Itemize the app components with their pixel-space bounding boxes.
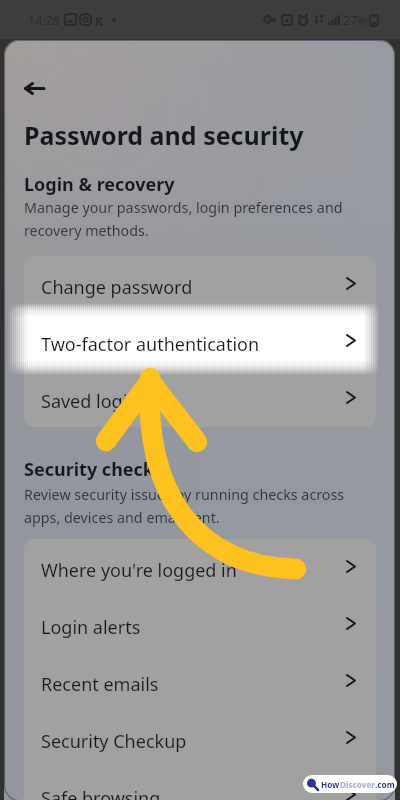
staticText: Security Checkup (41, 729, 187, 754)
staticText: Change password (41, 275, 193, 300)
button[interactable]: Where you're logged in (24, 539, 376, 596)
staticText: Saved logins (41, 389, 148, 414)
staticText: How (321, 779, 340, 790)
button[interactable]: Two-factor authentication (24, 313, 376, 370)
staticText: Discover (340, 779, 375, 790)
staticText: Password and security (24, 118, 304, 152)
button[interactable]: Two-factor authentication (24, 313, 376, 370)
staticText: Security checks (24, 457, 164, 482)
staticText: Two-factor authentication (41, 332, 260, 357)
staticText: Login alerts (41, 615, 141, 640)
staticText: Review security issues by running checks… (24, 485, 345, 527)
staticText: Safe browsing (41, 786, 161, 800)
staticText: Two-factor authentication (41, 332, 260, 357)
staticText: 14:28 (28, 12, 60, 29)
staticText: Login & recovery (24, 172, 175, 197)
staticText: 27% (343, 12, 368, 29)
button[interactable]: Back (12, 66, 57, 111)
staticText: Where you're logged in (41, 558, 237, 583)
button[interactable]: Recent emails (24, 653, 376, 710)
button[interactable]: Login alerts (24, 596, 376, 653)
staticText: K (95, 13, 103, 29)
staticText: Recent emails (41, 672, 159, 697)
button[interactable]: Saved logins (24, 370, 376, 427)
button[interactable]: Security Checkup (24, 710, 376, 767)
button[interactable]: Safe browsing (24, 767, 376, 800)
button[interactable]: Change password (24, 256, 376, 313)
staticText: .com (375, 779, 395, 790)
staticText: Manage your passwords, login preferences… (24, 198, 343, 240)
